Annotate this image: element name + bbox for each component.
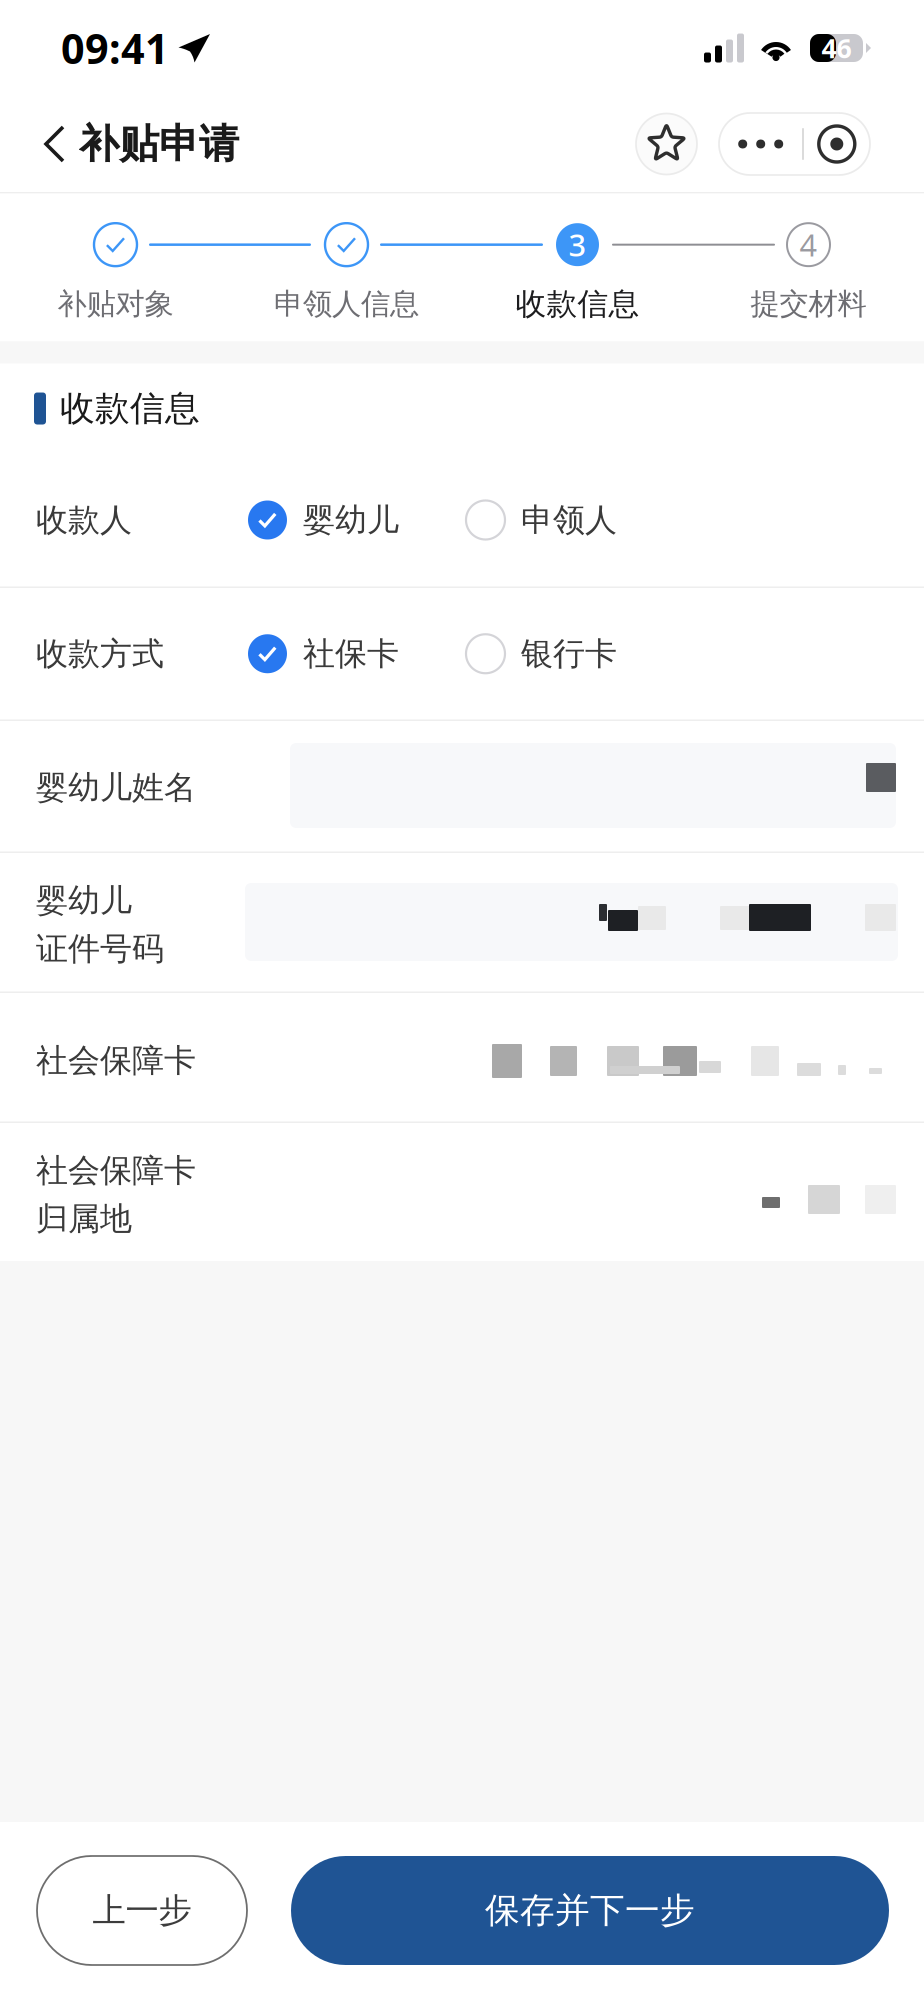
staticText: 收款方式 <box>36 634 164 673</box>
staticText: 4 <box>799 224 817 265</box>
staticText: 09:41 <box>61 21 169 75</box>
staticText: 收款信息 <box>60 387 200 430</box>
button[interactable]: 收藏 <box>636 113 697 174</box>
staticText: 申领人信息 <box>274 286 419 322</box>
button[interactable]: 申领人 <box>466 496 617 544</box>
staticText: 收款人 <box>36 500 132 540</box>
staticText: 申领人 <box>521 500 617 540</box>
staticText: 社会保障卡 <box>36 1151 196 1190</box>
staticText: 证件号码 <box>36 929 164 969</box>
staticText: 46 <box>821 30 851 66</box>
button[interactable]: 婴幼儿 <box>248 496 399 544</box>
button[interactable]: 银行卡 <box>466 630 617 678</box>
staticText: 社保卡 <box>303 634 399 673</box>
staticText: 保存并下一步 <box>485 1889 695 1932</box>
staticText: 银行卡 <box>521 634 617 673</box>
button[interactable]: 补贴申请 <box>0 96 255 192</box>
button[interactable]: 上一步 <box>37 1856 247 1965</box>
button[interactable]: 保存并下一步 <box>291 1856 889 1965</box>
button[interactable]: 更多 <box>719 113 870 175</box>
staticText: 婴幼儿 <box>36 881 132 920</box>
staticText: 上一步 <box>92 1890 191 1931</box>
staticText: 归属地 <box>36 1199 132 1239</box>
staticText: 社会保障卡 <box>36 1041 196 1080</box>
staticText: 补贴对象 <box>57 286 173 322</box>
button[interactable]: 社保卡 <box>248 630 399 678</box>
staticText: 补贴申请 <box>79 119 239 168</box>
staticText: 婴幼儿姓名 <box>36 768 196 807</box>
staticText: 3 <box>568 224 586 265</box>
staticText: 婴幼儿 <box>303 500 399 540</box>
staticText: 提交材料 <box>750 286 866 322</box>
staticText: 收款信息 <box>515 285 639 323</box>
